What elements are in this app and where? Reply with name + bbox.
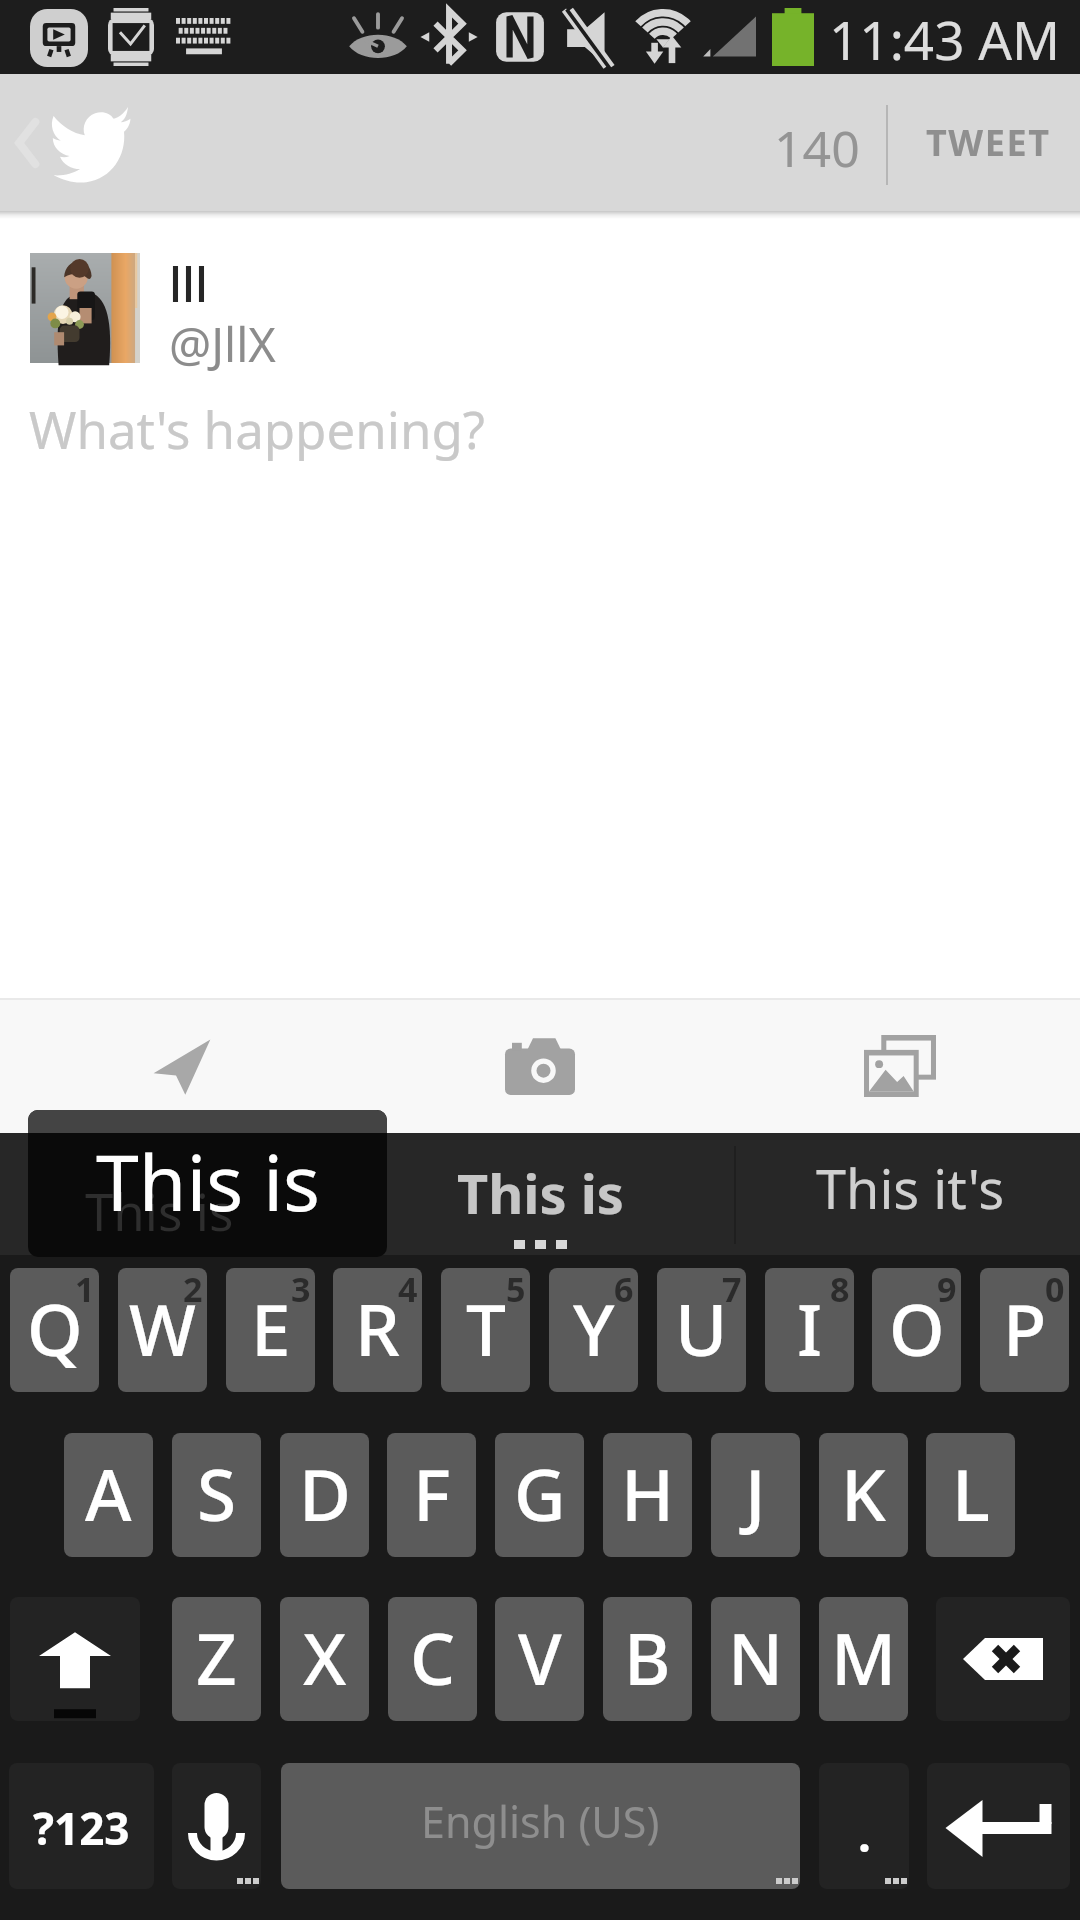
- button[interactable]: Enter: [927, 1763, 1070, 1889]
- button[interactable]: X: [280, 1597, 369, 1721]
- staticText: 11:43 AM: [829, 3, 1061, 75]
- staticText: 4: [398, 1268, 418, 1312]
- staticText: Q: [27, 1280, 83, 1377]
- staticText: D: [299, 1445, 351, 1542]
- button[interactable]: K: [819, 1433, 908, 1557]
- button[interactable]: Add photo from gallery: [720, 998, 1080, 1133]
- staticText: What's happening?: [29, 394, 485, 463]
- staticText: J: [745, 1445, 766, 1542]
- button[interactable]: Y: [549, 1268, 638, 1392]
- staticText: 0: [1045, 1268, 1065, 1312]
- button[interactable]: .: [819, 1763, 909, 1889]
- staticText: Z: [196, 1609, 237, 1706]
- staticText: V: [518, 1609, 562, 1706]
- button[interactable]: Shift: [10, 1597, 140, 1721]
- staticText: P: [1003, 1280, 1047, 1377]
- button[interactable]: B: [603, 1597, 692, 1721]
- button[interactable]: Voice input: [172, 1763, 261, 1889]
- button[interactable]: English (US): [281, 1763, 800, 1889]
- button[interactable]: This is: [360, 1133, 720, 1258]
- staticText: This is: [96, 1129, 320, 1234]
- button[interactable]: P: [980, 1268, 1069, 1392]
- staticText: 8: [830, 1268, 850, 1312]
- button[interactable]: O: [872, 1268, 961, 1392]
- button[interactable]: Q: [10, 1268, 99, 1392]
- staticText: @JllX: [169, 312, 276, 376]
- staticText: English (US): [421, 1792, 660, 1851]
- staticText: S: [197, 1445, 237, 1542]
- staticText: Y: [573, 1280, 615, 1377]
- button[interactable]: M: [819, 1597, 908, 1721]
- button[interactable]: R: [333, 1268, 422, 1392]
- button[interactable]: N: [711, 1597, 800, 1721]
- staticText: 9: [937, 1268, 957, 1312]
- button[interactable]: Add location: [0, 998, 360, 1133]
- staticText: 1: [75, 1268, 95, 1312]
- staticText: This is: [85, 1176, 234, 1245]
- staticText: TWEET: [926, 118, 1051, 167]
- button[interactable]: H: [603, 1433, 692, 1557]
- button[interactable]: W: [118, 1268, 207, 1392]
- button[interactable]: A: [64, 1433, 153, 1557]
- button[interactable]: Back: [0, 74, 180, 211]
- staticText: 3: [291, 1268, 311, 1312]
- button[interactable]: I: [765, 1268, 854, 1392]
- staticText: A: [85, 1445, 132, 1542]
- staticText: ?123: [33, 1798, 130, 1858]
- staticText: B: [624, 1609, 671, 1706]
- button[interactable]: Take photo: [360, 998, 720, 1133]
- staticText: O: [889, 1280, 945, 1377]
- staticText: 7: [722, 1268, 742, 1312]
- staticText: N: [728, 1609, 784, 1706]
- staticText: I: [797, 1280, 823, 1377]
- button[interactable]: Backspace: [936, 1597, 1070, 1721]
- staticText: M: [831, 1609, 897, 1706]
- staticText: 6: [614, 1268, 634, 1312]
- staticText: W: [129, 1280, 196, 1377]
- staticText: T: [466, 1280, 506, 1377]
- button[interactable]: E: [226, 1268, 315, 1392]
- staticText: This is: [457, 1156, 624, 1230]
- button[interactable]: J: [711, 1433, 800, 1557]
- button[interactable]: Z: [172, 1597, 261, 1721]
- staticText: U: [675, 1280, 728, 1377]
- button[interactable]: This is: [0, 1133, 360, 1258]
- button[interactable]: This it's: [720, 1133, 1080, 1258]
- staticText: L: [952, 1445, 990, 1542]
- button[interactable]: U: [657, 1268, 746, 1392]
- staticText: .: [858, 1803, 871, 1866]
- staticText: 2: [183, 1268, 203, 1312]
- staticText: R: [355, 1280, 400, 1377]
- staticText: 5: [506, 1268, 526, 1312]
- staticText: K: [841, 1445, 886, 1542]
- button[interactable]: V: [495, 1597, 584, 1721]
- staticText: 140: [774, 114, 860, 182]
- button[interactable]: C: [388, 1597, 477, 1721]
- staticText: G: [514, 1445, 566, 1542]
- button[interactable]: D: [280, 1433, 369, 1557]
- staticText: F: [413, 1445, 451, 1542]
- button[interactable]: G: [495, 1433, 584, 1557]
- button[interactable]: S: [172, 1433, 261, 1557]
- button[interactable]: L: [926, 1433, 1015, 1557]
- button[interactable]: F: [387, 1433, 476, 1557]
- staticText: lll: [169, 251, 208, 316]
- staticText: E: [251, 1280, 291, 1377]
- staticText: C: [410, 1609, 456, 1706]
- button[interactable]: ?123: [9, 1763, 154, 1889]
- staticText: This is: [106, 1153, 255, 1222]
- button[interactable]: Profile photo: [30, 253, 140, 363]
- button[interactable]: T: [441, 1268, 530, 1392]
- button[interactable]: TWEET: [896, 74, 1080, 211]
- staticText: This it's: [816, 1151, 1005, 1225]
- staticText: X: [303, 1609, 347, 1706]
- staticText: H: [621, 1445, 675, 1542]
